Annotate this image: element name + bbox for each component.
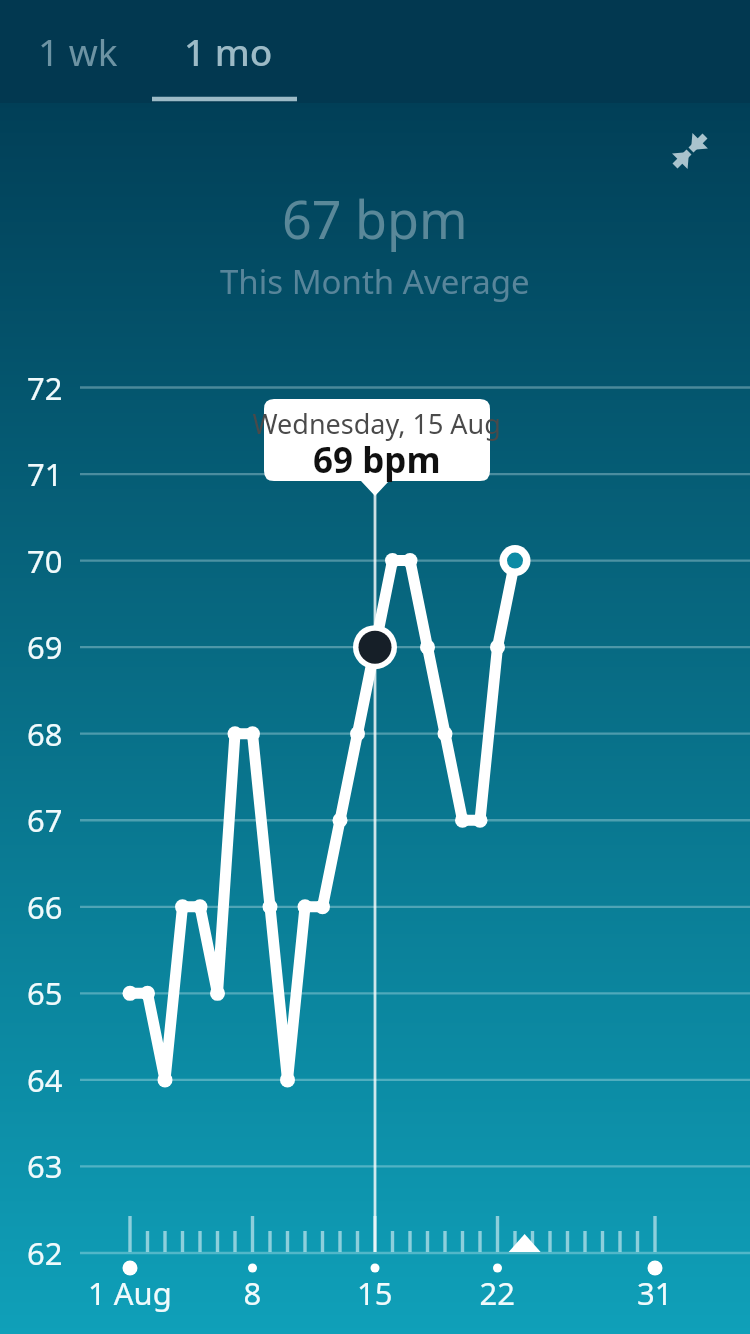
button[interactable]: Collapse chart (655, 118, 725, 188)
button[interactable]: 1 wk (0, 0, 150, 103)
button[interactable]: 1 mo (150, 0, 300, 103)
